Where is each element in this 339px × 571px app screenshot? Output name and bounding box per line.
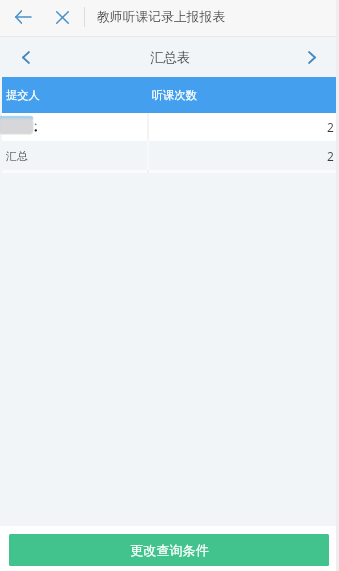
staticText: 听课次数 [152,88,197,102]
button[interactable]: Close [46,0,78,36]
button[interactable]: 更改查询条件 [9,534,329,566]
staticText: 2 [327,119,334,135]
button[interactable]: 2 [2,113,336,141]
staticText: 汇总表 [150,49,191,66]
button[interactable]: Back [0,0,46,36]
staticText: 更改查询条件 [130,542,209,559]
staticText: 汇总 [6,149,28,163]
staticText: 提交人 [6,88,40,102]
button[interactable]: Next page [288,37,336,77]
button[interactable]: 汇总 [2,141,336,170]
staticText: 2 [327,148,334,164]
button[interactable]: Previous page [0,37,52,77]
staticText: 教师听课记录上报报表 [97,9,225,25]
